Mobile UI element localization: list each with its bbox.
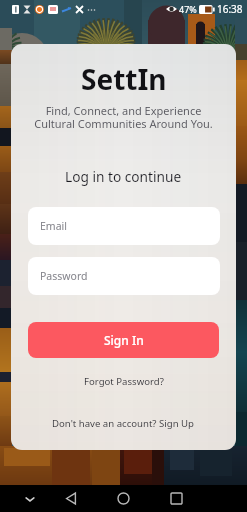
button[interactable]: Recent apps	[154, 485, 198, 512]
staticText: Log in to continue	[65, 167, 182, 186]
staticText: Don't have an account? Sign Up	[52, 417, 195, 430]
staticText: Password	[40, 269, 88, 283]
staticText: Sign In	[104, 332, 144, 348]
staticText: Forgot Password?	[84, 375, 164, 388]
button[interactable]: Don't have an account? Sign Up	[48, 415, 199, 432]
button[interactable]: Forgot Password?	[80, 373, 168, 390]
staticText: 47%	[179, 3, 197, 15]
button[interactable]: Back	[49, 485, 93, 512]
staticText: 16:38	[217, 2, 243, 16]
button[interactable]: Home	[101, 485, 145, 512]
button[interactable]: Hide keyboard	[10, 485, 50, 512]
button[interactable]: Email	[28, 207, 220, 245]
staticText: Email	[40, 219, 67, 233]
button[interactable]: Sign In	[28, 322, 219, 358]
staticText: SettIn	[81, 60, 167, 98]
button[interactable]: Password	[28, 257, 220, 295]
staticText: Find, Connect, and Experience Cultural C…	[34, 103, 213, 131]
